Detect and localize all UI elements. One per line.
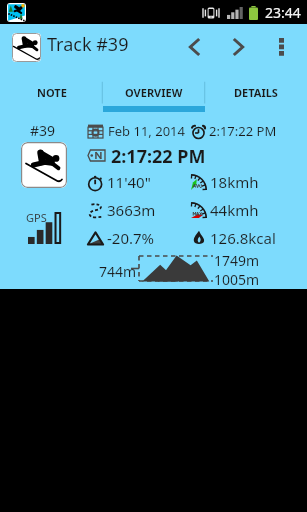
staticText: 18kmh (210, 172, 259, 192)
button[interactable]: DETAILS (205, 70, 307, 112)
button[interactable]: NOTE (0, 70, 103, 112)
staticText: 44kmh (210, 200, 259, 220)
staticText: 2:17:22 PM (111, 144, 206, 166)
button[interactable]: Activity type (21, 142, 67, 188)
staticText: NOTE (37, 85, 67, 100)
button[interactable]: Up (12, 33, 41, 62)
staticText: OVERVIEW (125, 85, 183, 100)
staticText: 2:17:22 PM (209, 122, 277, 140)
staticText: 1005m (214, 270, 260, 289)
staticText: #39 (30, 121, 56, 140)
staticText: Feb 11, 2014 (108, 122, 185, 140)
button[interactable]: Previous track (172, 24, 216, 70)
staticText: 3663m (107, 200, 156, 220)
staticText: 126.8kcal (210, 228, 276, 248)
button[interactable]: OVERVIEW (103, 70, 205, 112)
staticText: 744m (99, 262, 137, 281)
staticText: -20.7% (107, 228, 155, 248)
staticText: GPS (26, 210, 47, 225)
button[interactable]: Next track (216, 24, 260, 70)
button[interactable]: More options (266, 24, 296, 70)
staticText: 1749m (214, 251, 260, 270)
staticText: 23:44 (265, 3, 301, 22)
staticText: 11'40" (107, 172, 151, 192)
staticText: Track #39 (47, 32, 129, 57)
staticText: DETAILS (234, 85, 278, 100)
